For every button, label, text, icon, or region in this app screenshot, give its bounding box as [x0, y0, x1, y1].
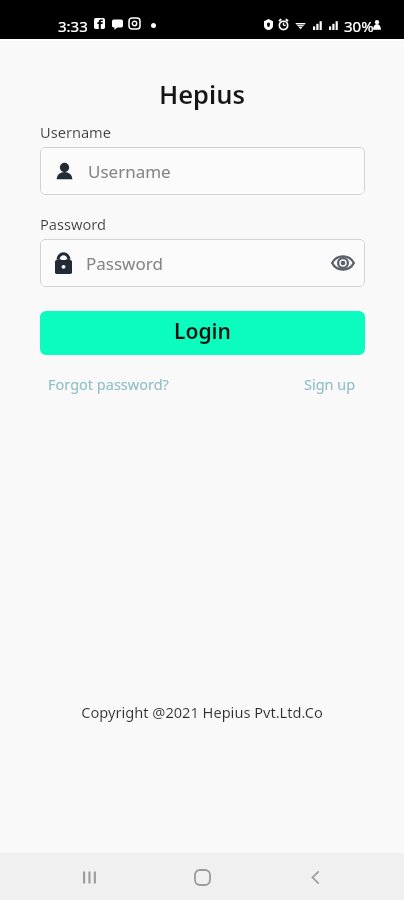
staticText: Login: [174, 317, 231, 346]
staticText: Hepius: [0, 77, 404, 112]
button[interactable]: Back: [292, 854, 338, 900]
button[interactable]: Home: [179, 854, 225, 900]
button[interactable]: Show password: [330, 252, 355, 274]
staticText: 30%: [344, 16, 374, 36]
staticText: Username: [40, 122, 111, 142]
button[interactable]: Login: [40, 311, 365, 355]
staticText: Sign up: [304, 374, 356, 394]
staticText: Password: [40, 214, 107, 234]
button[interactable]: Password: [40, 239, 365, 287]
button[interactable]: Recent apps: [67, 854, 113, 900]
button[interactable]: Username: [40, 147, 365, 195]
staticText: Username: [88, 160, 355, 183]
staticText: Forgot password?: [48, 374, 169, 394]
button[interactable]: Sign up: [296, 370, 364, 398]
staticText: Password: [86, 252, 330, 275]
staticText: Copyright @2021 Hepius Pvt.Ltd.Co: [0, 702, 404, 722]
staticText: 3:33: [58, 16, 88, 36]
button[interactable]: Forgot password?: [40, 370, 177, 398]
